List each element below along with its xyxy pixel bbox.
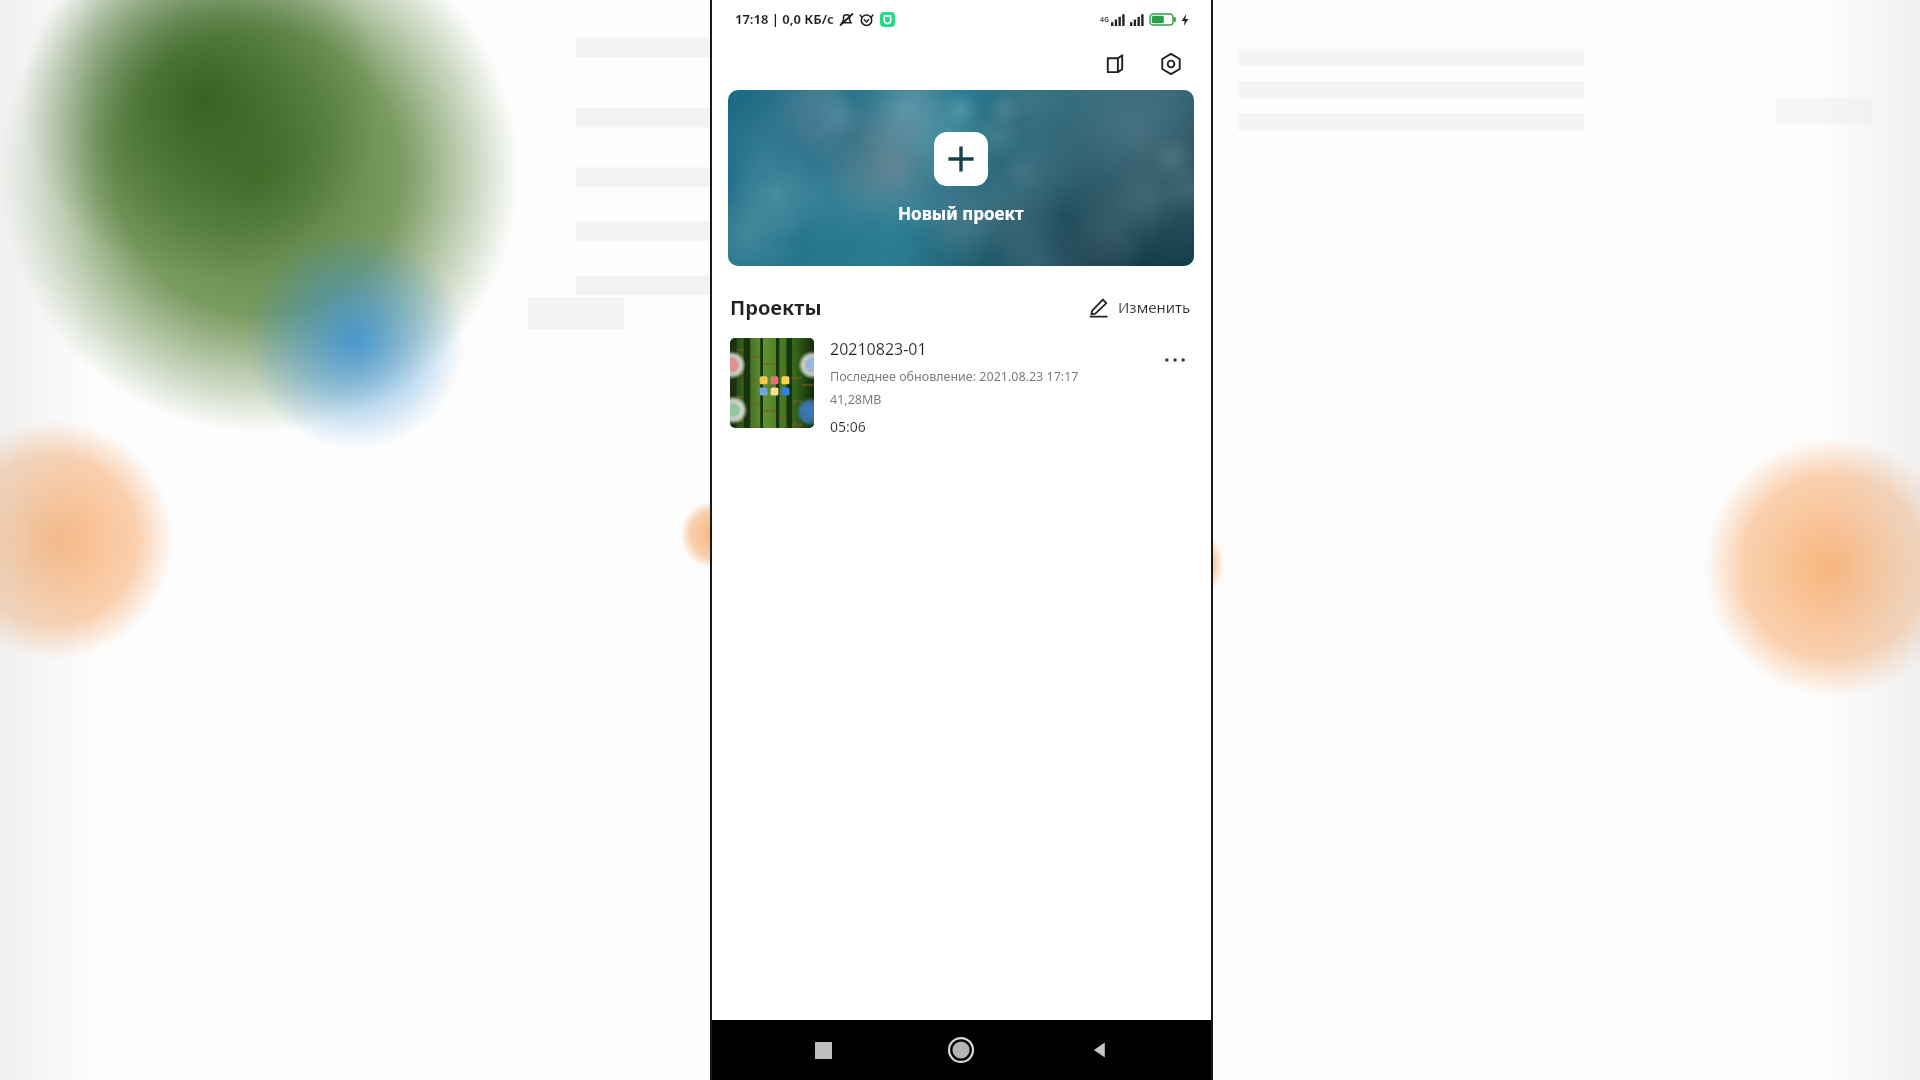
button[interactable]: Новый проект: [728, 90, 1194, 266]
button[interactable]: Settings: [1149, 42, 1193, 86]
button[interactable]: Home: [934, 1023, 988, 1077]
button[interactable]: Recents: [796, 1023, 850, 1077]
button[interactable]: Tutorials: [1093, 42, 1137, 86]
staticText: 4G: [1100, 15, 1110, 25]
staticText: 20210823-01: [830, 338, 927, 360]
staticText: Изменить: [1118, 297, 1191, 317]
staticText: Проекты: [730, 294, 822, 321]
staticText: 41,28MB: [830, 391, 882, 408]
staticText: 17:18 | 0,0 КБ/с: [735, 10, 834, 28]
staticText: Последнее обновление: 2021.08.23 17:17: [830, 368, 1079, 385]
button[interactable]: 20210823-01: [711, 322, 1211, 436]
button[interactable]: Изменить: [1083, 292, 1195, 322]
staticText: 05:06: [830, 417, 866, 436]
staticText: Новый проект: [898, 202, 1024, 225]
button[interactable]: Back: [1073, 1023, 1127, 1077]
button[interactable]: More options: [1153, 338, 1197, 382]
